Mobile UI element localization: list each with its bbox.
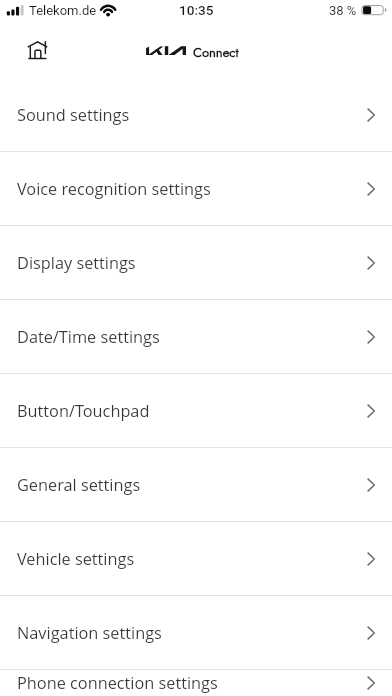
- button[interactable]: Vehicle settings: [0, 522, 392, 595]
- staticText: Voice recognition settings: [17, 178, 211, 200]
- staticText: 10:35: [179, 2, 214, 18]
- staticText: Display settings: [17, 252, 136, 274]
- staticText: Date/Time settings: [17, 326, 160, 348]
- button[interactable]: Phone connection settings: [0, 670, 392, 696]
- button[interactable]: Display settings: [0, 226, 392, 299]
- staticText: Button/Touchpad: [17, 400, 150, 422]
- staticText: 38 %: [329, 3, 357, 18]
- button[interactable]: Voice recognition settings: [0, 152, 392, 225]
- button[interactable]: Navigation settings: [0, 596, 392, 669]
- staticText: Navigation settings: [17, 622, 162, 644]
- staticText: Connect: [193, 43, 239, 62]
- button[interactable]: General settings: [0, 448, 392, 521]
- staticText: General settings: [17, 474, 141, 496]
- button[interactable]: Home: [15, 29, 60, 71]
- staticText: Sound settings: [17, 104, 130, 126]
- button[interactable]: Date/Time settings: [0, 300, 392, 373]
- button[interactable]: Button/Touchpad: [0, 374, 392, 447]
- staticText: Phone connection settings: [17, 672, 218, 694]
- staticText: Vehicle settings: [17, 548, 135, 570]
- button[interactable]: Sound settings: [0, 78, 392, 151]
- staticText: Telekom.de: [29, 3, 97, 18]
